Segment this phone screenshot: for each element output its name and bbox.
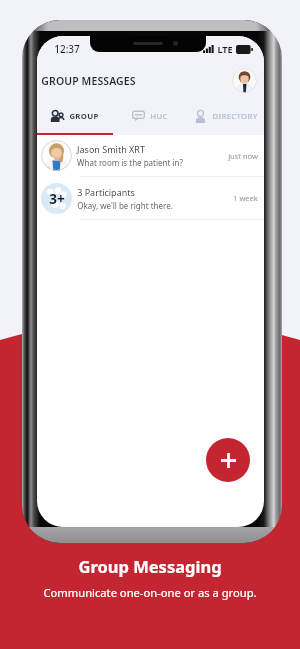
staticText: What room is the patient in? <box>77 157 183 168</box>
staticText: 12:37 <box>54 42 80 56</box>
staticText: Jason Smith XRT <box>77 143 145 155</box>
staticText: Okay, we'll be right there. <box>77 200 173 211</box>
button[interactable]: New message <box>206 438 250 482</box>
staticText: GROUP MESSAGES <box>41 74 136 88</box>
button[interactable]: Jason Smith XRT <box>37 135 264 177</box>
button[interactable]: HUC <box>112 99 188 133</box>
staticText: Group Messaging <box>78 555 222 577</box>
staticText: DIRECTORY <box>212 111 258 122</box>
staticText: Communicate one-on-one or as a group. <box>43 585 257 600</box>
staticText: 3+ <box>49 190 65 208</box>
staticText: just now <box>228 151 258 161</box>
button[interactable]: 3+ <box>37 177 264 220</box>
staticText: HUC <box>150 111 168 122</box>
button[interactable]: DIRECTORY <box>188 99 264 133</box>
button[interactable]: Profile <box>232 68 257 93</box>
staticText: LTE <box>217 43 233 55</box>
staticText: 1 week <box>233 193 258 203</box>
staticText: GROUP <box>69 111 99 122</box>
button[interactable]: GROUP <box>37 99 112 133</box>
staticText: 3 Participants <box>77 186 135 198</box>
